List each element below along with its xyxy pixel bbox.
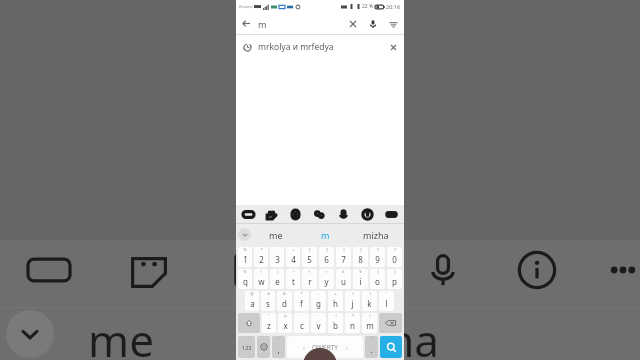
button[interactable]: # [261, 291, 275, 311]
button[interactable]: ) [387, 247, 402, 267]
button[interactable]: Emoji [257, 336, 270, 358]
staticText: mizha [363, 229, 389, 241]
staticText: me [88, 310, 154, 358]
staticText: + [334, 291, 337, 296]
staticText: > [325, 269, 328, 274]
button[interactable]: More [383, 206, 400, 223]
staticText: + [292, 247, 295, 252]
button[interactable]: ¥ [353, 269, 368, 289]
button[interactable]: / [362, 313, 377, 333]
button[interactable]: \ [254, 269, 268, 289]
button[interactable]: ' [379, 291, 394, 311]
staticText: { [343, 247, 345, 252]
button[interactable]: Filter [383, 14, 403, 34]
button[interactable]: ! [272, 336, 285, 358]
staticText: 20:16 [386, 3, 401, 10]
staticText: b [333, 320, 338, 331]
button[interactable]: ‹ [287, 336, 363, 358]
staticText: · [318, 313, 320, 318]
button[interactable]: · [294, 313, 309, 333]
button[interactable]: ? [365, 336, 378, 358]
staticText: a [250, 298, 255, 309]
staticText: 3 [275, 254, 280, 265]
staticText: c [300, 320, 304, 331]
button[interactable]: GIF [240, 206, 257, 223]
button[interactable]: - [311, 291, 326, 311]
staticText: ] [326, 247, 328, 252]
staticText: s [266, 298, 270, 309]
staticText: } [394, 269, 396, 274]
button[interactable]: + [328, 291, 343, 311]
button[interactable]: mrkolya и mrfedya [236, 35, 404, 59]
staticText: { [377, 269, 379, 274]
button[interactable]: m [300, 224, 350, 245]
staticText: | [276, 269, 279, 274]
button[interactable]: ~ [286, 269, 300, 289]
button[interactable]: Voice search [363, 14, 383, 34]
staticText: y [324, 276, 329, 287]
staticText: , [277, 344, 280, 355]
staticText: 8 [358, 254, 363, 265]
button[interactable]: Clipboard [287, 206, 304, 223]
button[interactable]: | [270, 269, 284, 289]
button[interactable]: Search [380, 336, 402, 358]
button[interactable]: Backspace [379, 313, 402, 333]
button[interactable]: p [278, 313, 292, 333]
button[interactable]: Back [236, 13, 257, 34]
button[interactable]: Clear [343, 14, 363, 34]
button[interactable]: Voice input [335, 206, 352, 223]
button[interactable]: * [254, 247, 268, 267]
button[interactable]: % [238, 269, 252, 289]
button[interactable]: ) [362, 291, 377, 311]
staticText: ( [352, 291, 354, 296]
staticText: ' [386, 291, 387, 296]
staticText: j [351, 298, 354, 309]
button[interactable]: me [251, 224, 300, 245]
button[interactable]: ( [345, 291, 360, 311]
button[interactable]: { [336, 247, 351, 267]
button[interactable]: { [370, 269, 385, 289]
button[interactable]: ? [345, 313, 360, 333]
button[interactable]: Stickers [263, 206, 280, 223]
button[interactable]: < [302, 269, 317, 289]
button[interactable]: [ [302, 247, 317, 267]
button[interactable]: mizha [350, 224, 402, 245]
staticText: ? [371, 336, 373, 341]
staticText: % [243, 247, 247, 252]
staticText: ) [369, 291, 371, 296]
button[interactable]: & [277, 291, 292, 311]
staticText: < [308, 269, 311, 274]
staticText: mizha [314, 310, 440, 358]
button[interactable]: Shift [238, 313, 260, 333]
button[interactable]: @ [245, 291, 259, 311]
staticText: m [321, 229, 330, 241]
button[interactable]: ! [328, 313, 343, 333]
button[interactable]: · [311, 313, 326, 333]
staticText: - [318, 291, 320, 296]
button[interactable]: ] [319, 247, 334, 267]
button[interactable]: ( [370, 247, 385, 267]
staticText: ? [352, 313, 354, 318]
button[interactable]: + [286, 247, 300, 267]
staticText: t [292, 276, 295, 287]
staticText: } [360, 247, 362, 252]
staticText: " [268, 313, 270, 318]
staticText: 0 [392, 254, 397, 265]
button[interactable]: Expand suggestions [238, 228, 251, 241]
button[interactable]: " [262, 313, 276, 333]
button[interactable]: * [294, 291, 309, 311]
button[interactable]: £ [336, 269, 351, 289]
button[interactable]: Settings [359, 206, 376, 223]
button[interactable]: 123 [238, 336, 255, 358]
button[interactable]: Remove [383, 37, 403, 57]
button[interactable]: } [387, 269, 402, 289]
button[interactable]: % [238, 247, 252, 267]
staticText: * [300, 291, 303, 296]
staticText: - [276, 247, 278, 252]
button[interactable]: - [270, 247, 284, 267]
button[interactable]: } [353, 247, 368, 267]
staticText: o [375, 276, 380, 287]
button[interactable]: > [319, 269, 334, 289]
button[interactable]: Translate [311, 206, 328, 223]
staticText: ) [394, 247, 396, 252]
